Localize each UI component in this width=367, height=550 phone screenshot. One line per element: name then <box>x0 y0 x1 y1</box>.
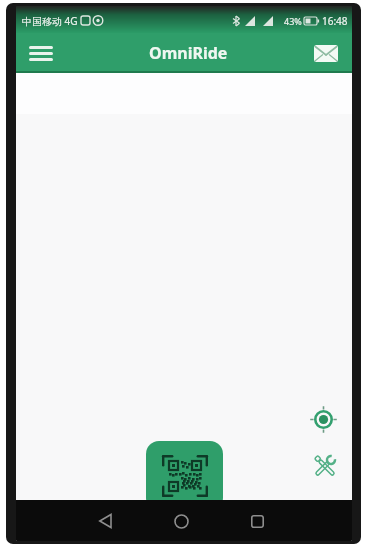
staticText: OmniRide <box>149 42 228 64</box>
button[interactable] <box>146 441 223 511</box>
staticText: 16:48 <box>322 14 348 28</box>
button[interactable] <box>24 36 58 70</box>
button[interactable] <box>310 37 342 69</box>
button[interactable] <box>310 451 339 480</box>
staticText: 43% <box>284 15 302 27</box>
button[interactable] <box>164 504 198 538</box>
button[interactable] <box>309 405 338 434</box>
staticText: 中国移动 4G <box>22 14 78 28</box>
button[interactable] <box>88 504 122 538</box>
button[interactable] <box>240 504 274 538</box>
